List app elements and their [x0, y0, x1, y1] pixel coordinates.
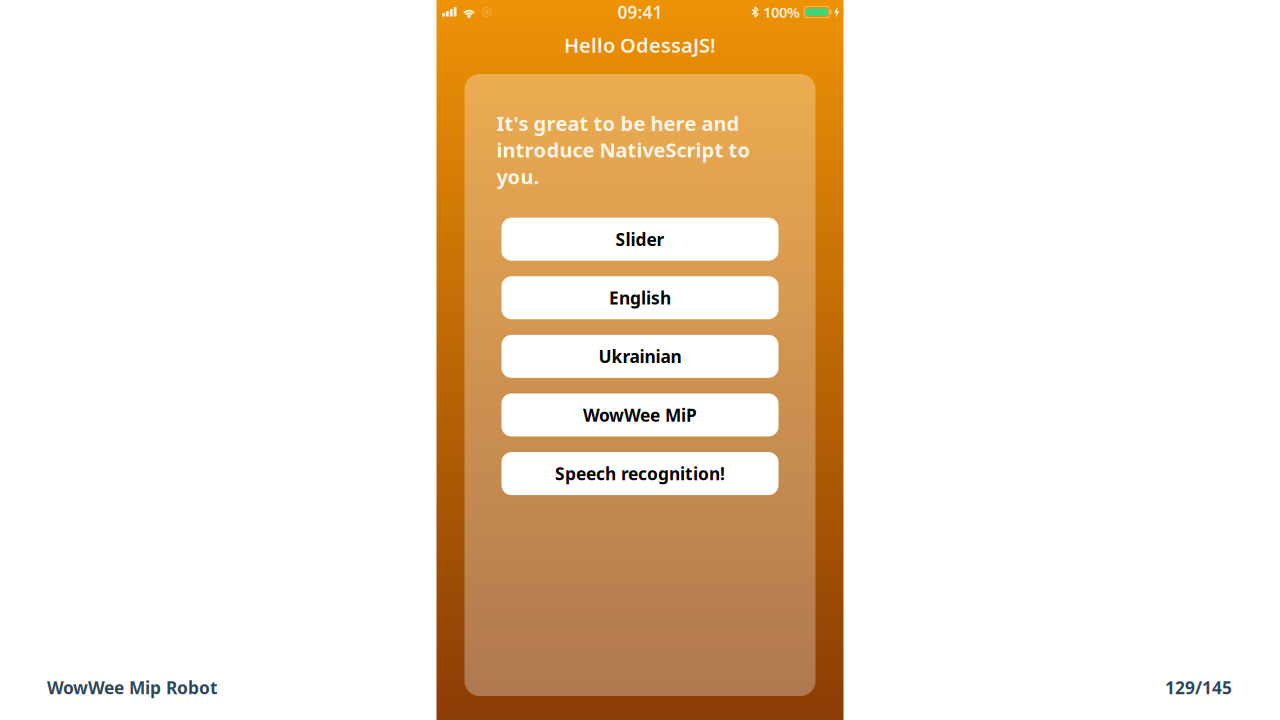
staticText: It's great to be here and introduce Nati…: [496, 110, 750, 190]
staticText: Slider: [615, 228, 664, 251]
button[interactable]: English: [501, 276, 778, 319]
staticText: 09:41: [617, 0, 662, 23]
staticText: English: [609, 286, 671, 309]
staticText: WowWee Mip Robot: [47, 676, 218, 699]
staticText: Speech recognition!: [555, 462, 725, 485]
button[interactable]: WowWee MiP: [501, 393, 778, 436]
button[interactable]: Slider: [501, 218, 778, 261]
staticText: WowWee MiP: [583, 403, 697, 426]
staticText: Ukrainian: [598, 345, 681, 368]
staticText: 129/145: [1165, 676, 1232, 699]
button[interactable]: Ukrainian: [501, 335, 778, 378]
button[interactable]: Speech recognition!: [501, 452, 778, 495]
staticText: 100%: [763, 2, 800, 22]
staticText: Hello OdessaJS!: [564, 32, 716, 58]
